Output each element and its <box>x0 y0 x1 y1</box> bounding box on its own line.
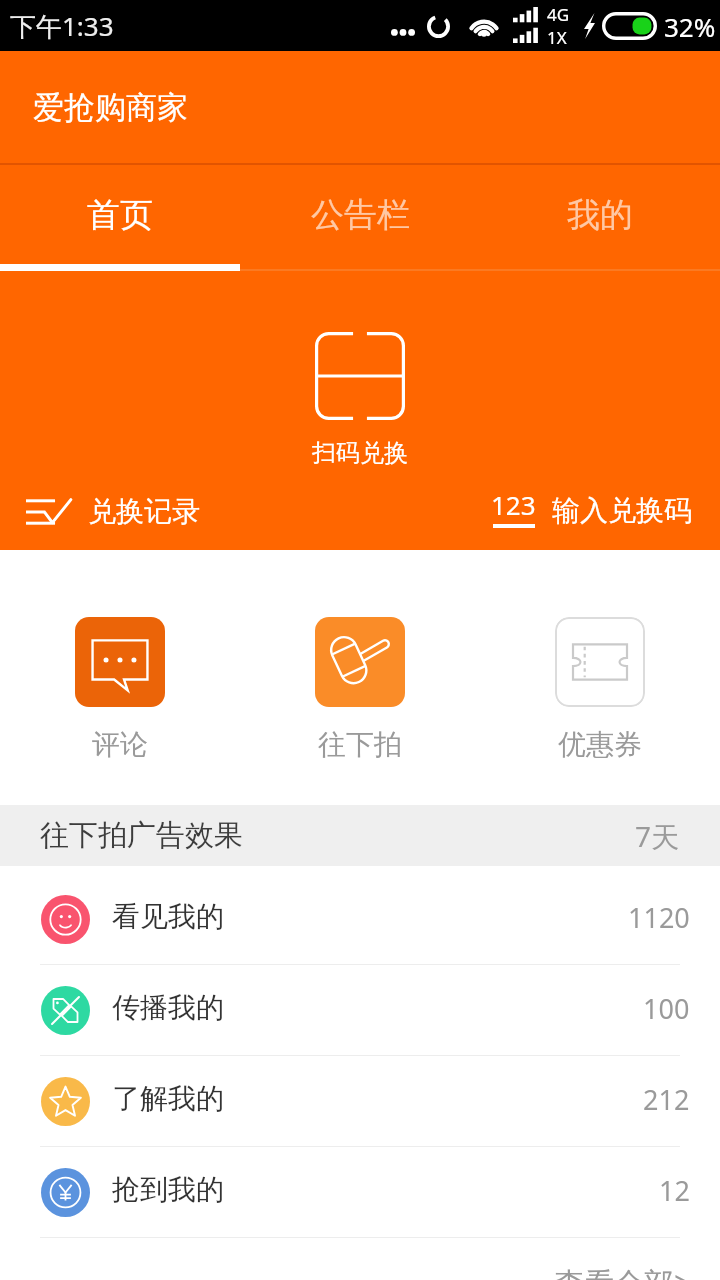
staticText: 往下拍 <box>318 727 402 762</box>
staticText: 看见我的 <box>112 899 224 934</box>
staticText: 我的 <box>567 194 633 236</box>
button[interactable]: 兑换记录 <box>0 482 224 550</box>
staticText: 抢到我的 <box>112 1172 224 1207</box>
staticText: 了解我的 <box>112 1081 224 1116</box>
staticText: 传播我的 <box>112 990 224 1025</box>
staticText: 1120 <box>628 899 690 936</box>
button[interactable]: 123 <box>467 475 720 550</box>
staticText: 兑换记录 <box>88 494 200 529</box>
staticText: 100 <box>643 990 690 1027</box>
button[interactable]: 抢到我的 <box>0 1147 720 1237</box>
staticText: 评论 <box>92 727 148 762</box>
staticText: 往下拍广告效果 <box>40 817 243 854</box>
staticText: 12 <box>659 1172 690 1209</box>
button[interactable]: 看见我的 <box>0 874 720 964</box>
button[interactable]: 了解我的 <box>0 1056 720 1146</box>
staticText: 32% <box>664 9 716 44</box>
staticText: 爱抢购商家 <box>33 88 188 127</box>
staticText: 123 <box>491 487 536 522</box>
staticText: 212 <box>643 1081 690 1118</box>
staticText: 扫码兑换 <box>312 438 408 468</box>
staticText: 输入兑换码 <box>552 493 692 528</box>
button[interactable]: 优惠券 <box>480 550 720 805</box>
staticText: 下午1:33 <box>10 8 114 44</box>
staticText: 4G <box>547 3 570 26</box>
staticText: 7天 <box>635 817 680 855</box>
button[interactable]: 扫码兑换 <box>264 271 456 480</box>
button[interactable]: 我的 <box>480 165 720 271</box>
staticText: 1X <box>547 26 567 49</box>
button[interactable]: 首页 <box>0 165 240 271</box>
button[interactable]: 传播我的 <box>0 965 720 1055</box>
button[interactable]: 往下拍 <box>240 550 480 805</box>
button[interactable]: 公告栏 <box>240 165 480 271</box>
staticText: 优惠券 <box>558 727 642 762</box>
button[interactable]: 查看全部> <box>0 1238 720 1280</box>
staticText: 查看全部> <box>554 1262 692 1280</box>
button[interactable]: 评论 <box>0 550 240 805</box>
staticText: 公告栏 <box>311 194 410 236</box>
staticText: 首页 <box>87 194 153 236</box>
